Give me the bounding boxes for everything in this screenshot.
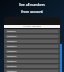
- staticText: Account 3: [6, 40, 17, 43]
- button[interactable]: Account 2: [4, 34, 60, 38]
- staticText: Account 5: [6, 50, 17, 53]
- button[interactable]: Account 4: [4, 44, 60, 48]
- button[interactable]: Account 7: [4, 59, 60, 63]
- button[interactable]: Account 5: [4, 49, 60, 53]
- button[interactable]: Account 3: [4, 39, 60, 43]
- button[interactable]: Account numbers: [4, 25, 60, 28]
- staticText: Account 9: [6, 70, 17, 72]
- staticText: Account 2: [6, 35, 17, 38]
- staticText: from account: [21, 9, 43, 14]
- staticText: Account 6: [6, 55, 17, 58]
- button[interactable]: Account 1: [4, 29, 60, 33]
- button[interactable]: Account 6: [4, 54, 60, 58]
- staticText: Account 8: [6, 65, 17, 68]
- staticText: Account 7: [6, 60, 17, 63]
- staticText: Account 4: [6, 45, 17, 48]
- staticText: See all numbers: [19, 2, 45, 7]
- button[interactable]: Account 8: [4, 64, 60, 68]
- button[interactable]: Account 9: [4, 69, 60, 72]
- staticText: Account 1: [6, 30, 17, 33]
- staticText: Account numbers: [23, 25, 42, 28]
